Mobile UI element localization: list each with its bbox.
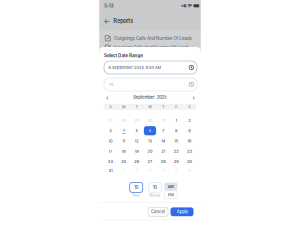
staticText: Outgoings Calls And Number Of Leads	[114, 33, 270, 44]
button[interactable]: 5	[170, 166, 183, 175]
button[interactable]: 20	[143, 146, 156, 156]
button[interactable]: Next month	[190, 94, 197, 101]
button[interactable]: 31	[104, 166, 117, 175]
staticText: ←	[104, 17, 110, 25]
button[interactable]: Hour	[130, 182, 143, 192]
staticText: 10	[132, 182, 140, 192]
staticText: S	[187, 102, 192, 111]
button[interactable]: 10	[104, 136, 117, 146]
button[interactable]: 3	[104, 126, 117, 135]
staticText: 3	[147, 166, 152, 175]
button[interactable]: 4	[157, 166, 170, 175]
button[interactable]: 2	[130, 166, 143, 175]
staticText: 21	[159, 146, 167, 156]
staticText: S	[108, 102, 113, 111]
button[interactable]: 6	[183, 166, 196, 175]
button[interactable]: 16	[183, 136, 196, 146]
button[interactable]: Outgoings Calls And Number Of Leads	[99, 33, 201, 43]
staticText: September 2025	[116, 92, 183, 102]
button[interactable]: 29	[130, 116, 143, 125]
button[interactable]: 18	[117, 146, 130, 156]
staticText: 1	[122, 166, 125, 175]
staticText: 23	[184, 146, 194, 156]
staticText: 13	[146, 136, 154, 146]
button[interactable]: 24	[104, 157, 117, 166]
button[interactable]: 6 September 2025, 9:00 AM	[104, 61, 197, 74]
staticText: PM	[165, 190, 177, 199]
staticText: 2	[134, 166, 139, 175]
staticText: 17	[106, 146, 114, 156]
button[interactable]: 14	[157, 136, 170, 146]
button[interactable]: 7	[157, 126, 170, 135]
button[interactable]: Minute	[148, 182, 161, 192]
button[interactable]: To	[104, 78, 197, 91]
button[interactable]: 19	[130, 146, 143, 156]
button[interactable]: 11	[117, 136, 130, 146]
button[interactable]: Back to Reports	[99, 17, 201, 25]
button[interactable]: Previous month	[103, 94, 110, 101]
button[interactable]: 27	[104, 116, 117, 125]
button[interactable]: 21	[157, 146, 170, 156]
staticText: 31	[159, 116, 167, 125]
button[interactable]: Cancel	[148, 207, 168, 216]
button[interactable]: 22	[170, 146, 183, 156]
button[interactable]: 6	[144, 126, 156, 135]
staticText: 27	[105, 116, 115, 125]
button[interactable]: 25	[117, 157, 130, 166]
staticText: 20	[145, 146, 155, 156]
staticText: 10	[151, 182, 159, 192]
staticText: 19	[133, 146, 141, 156]
staticText: M	[120, 102, 127, 111]
button[interactable]: 2	[183, 116, 196, 125]
button[interactable]: 1	[170, 116, 183, 125]
button[interactable]: 28	[157, 157, 170, 166]
staticText: 31	[106, 166, 114, 175]
button[interactable]: 4	[117, 126, 130, 135]
staticText: 5:13	[104, 0, 123, 11]
staticText: 28	[119, 116, 129, 125]
button[interactable]: AM	[164, 182, 177, 191]
button[interactable]: 13	[143, 136, 156, 146]
staticText: 9	[187, 126, 192, 136]
button[interactable]: 5	[130, 126, 143, 135]
button[interactable]: 31	[157, 116, 170, 125]
staticText: 1	[175, 116, 178, 125]
button[interactable]: 12	[130, 136, 143, 146]
staticText: ›	[193, 94, 195, 101]
staticText: 18	[120, 146, 128, 156]
staticText: T	[161, 102, 166, 111]
staticText: Apply	[171, 207, 194, 217]
staticText: 27	[145, 157, 155, 166]
staticText: 28	[158, 157, 168, 166]
staticText: 2	[187, 116, 192, 125]
staticText: 5	[134, 126, 139, 136]
button[interactable]: 15	[170, 136, 183, 146]
staticText: To	[109, 80, 119, 89]
staticText: 5	[174, 166, 179, 175]
staticText: 6	[147, 126, 152, 136]
button[interactable]: 28	[117, 116, 130, 125]
staticText: Select Date Range	[104, 50, 182, 61]
button[interactable]: 8	[170, 126, 183, 135]
button[interactable]: Apply	[170, 207, 193, 216]
staticText: W	[146, 102, 153, 111]
staticText: 6 September 2025, 9:00 AM	[109, 63, 214, 72]
button[interactable]: 30	[143, 116, 156, 125]
button[interactable]: 23	[183, 146, 196, 156]
button[interactable]: 27	[143, 157, 156, 166]
staticText: 30	[145, 116, 155, 125]
staticText: 25	[119, 157, 129, 166]
staticText: 14	[159, 136, 167, 146]
button[interactable]: 17	[104, 146, 117, 156]
button[interactable]: 3	[143, 166, 156, 175]
staticText: AM	[165, 182, 177, 191]
staticText: Reports	[113, 18, 133, 24]
staticText: 16	[185, 136, 193, 146]
button[interactable]: 30	[183, 157, 196, 166]
staticText: 3	[108, 126, 113, 136]
button[interactable]: PM	[164, 191, 177, 199]
button[interactable]: 9	[183, 126, 196, 135]
button[interactable]: 29	[170, 157, 183, 166]
button[interactable]: 26	[130, 157, 143, 166]
